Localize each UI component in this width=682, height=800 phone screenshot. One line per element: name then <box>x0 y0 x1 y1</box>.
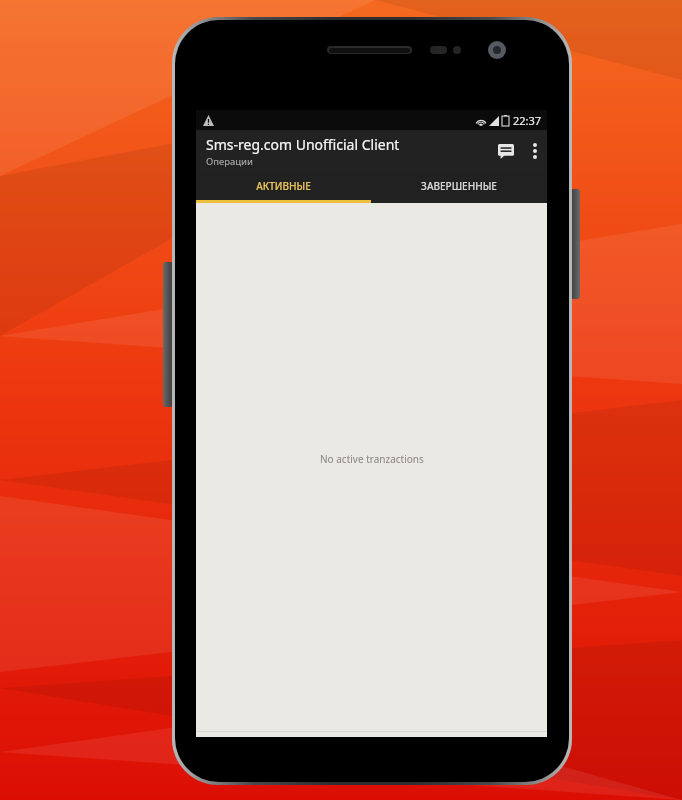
staticText: Операции <box>206 155 253 168</box>
staticText: ЗАВЕРШЕННЫЕ <box>421 179 497 193</box>
button[interactable]: More options <box>523 130 547 172</box>
staticText: No active tranzactions <box>320 452 424 466</box>
button[interactable]: ЗАВЕРШЕННЫЕ <box>371 172 547 200</box>
staticText: Sms-reg.com Unofficial Client <box>206 135 400 154</box>
button[interactable]: Messages <box>489 130 523 172</box>
staticText: АКТИВНЫЕ <box>256 179 311 193</box>
staticText: 22:37 <box>513 113 542 128</box>
button[interactable]: АКТИВНЫЕ <box>196 172 371 200</box>
